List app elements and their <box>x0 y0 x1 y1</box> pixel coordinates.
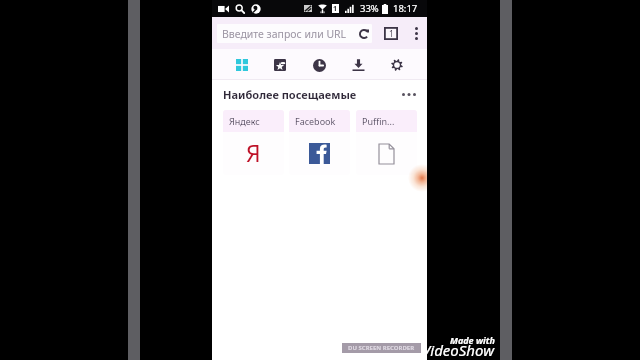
button[interactable]: History <box>306 52 332 78</box>
button[interactable]: Speed dial <box>229 52 255 78</box>
staticText: 18:17 <box>393 2 418 15</box>
button[interactable]: Section menu <box>400 85 418 103</box>
button[interactable]: Bookmarks <box>267 52 293 78</box>
button[interactable]: Tabs <box>382 24 400 42</box>
staticText: Наиболее посещаемые <box>223 87 357 102</box>
button[interactable]: Settings <box>384 52 410 78</box>
staticText: Puffin... <box>362 115 395 127</box>
button[interactable]: More options <box>407 24 425 42</box>
button[interactable]: Facebook <box>289 110 350 175</box>
button[interactable]: Downloads <box>345 52 371 78</box>
staticText: Я <box>246 137 261 168</box>
staticText: VideoShow <box>422 340 495 360</box>
button[interactable]: Reload <box>357 27 371 41</box>
staticText: 1 <box>389 28 394 40</box>
button[interactable]: Введите запрос или URL <box>217 24 372 43</box>
staticText: Facebook <box>295 115 336 127</box>
staticText: 1 <box>333 4 338 13</box>
button[interactable]: Яндекс <box>223 110 284 175</box>
staticText: DU SCREEN RECORDER <box>348 344 415 352</box>
button[interactable]: Puffin... <box>356 110 417 175</box>
staticText: Введите запрос или URL <box>222 27 347 41</box>
staticText: 33% <box>360 2 379 15</box>
staticText: Яндекс <box>229 115 260 127</box>
staticText: Made with <box>450 334 495 346</box>
